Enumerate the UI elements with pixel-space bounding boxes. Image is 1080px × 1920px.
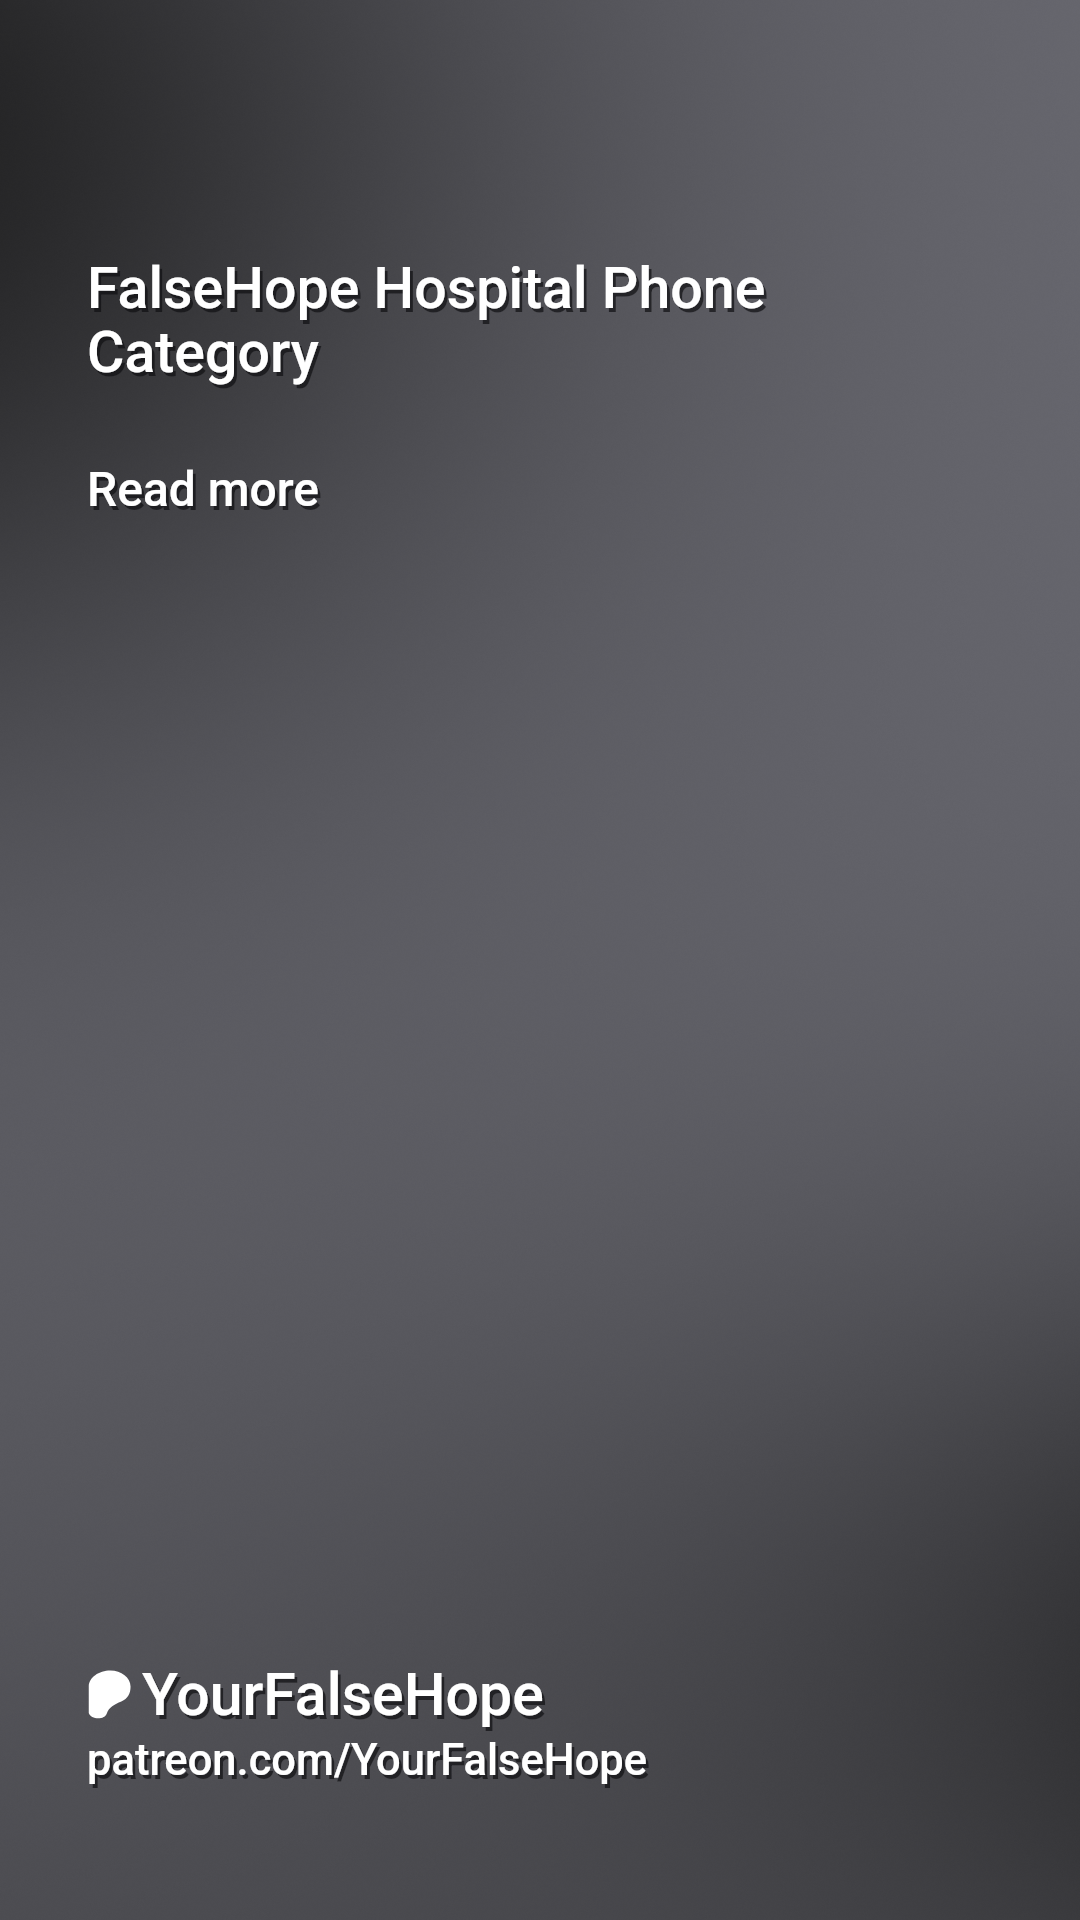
staticText: FalseHope Hospital Phone Category [90,259,833,390]
button[interactable]: Read more [0,461,360,517]
staticText: YourFalseHope [142,1660,544,1729]
button[interactable]: Patreon [0,1660,648,1920]
staticText: Read more [87,461,320,517]
staticText: Read more [90,465,323,521]
staticText: YourFalseHope [145,1664,547,1733]
staticText: patreon.com/YourFalseHope [87,1735,648,1786]
staticText: patreon.com/YourFalseHope [90,1739,651,1790]
other: Patreon [87,1670,131,1720]
staticText: FalseHope Hospital Phone Category [87,255,830,386]
